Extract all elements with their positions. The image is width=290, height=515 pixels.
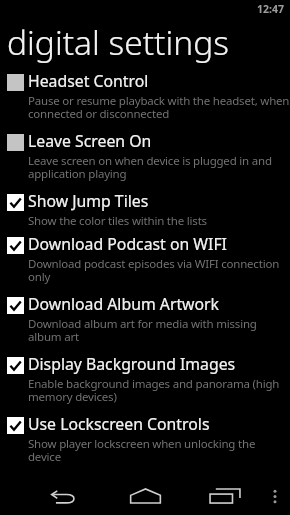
staticText: Show player lockscreen when unlocking th… <box>28 436 290 465</box>
staticText: digital settings <box>7 19 229 65</box>
button[interactable]: Use Lockscreen Controls <box>0 412 290 472</box>
staticText: Display Background Images <box>28 353 236 375</box>
button[interactable]: Download Podcast on WIFI <box>0 232 290 292</box>
staticText: Download Album Artwork <box>28 293 220 315</box>
button[interactable]: Home <box>114 475 176 515</box>
staticText: Show Jump Tiles <box>28 190 149 212</box>
button[interactable]: Download Album Artwork <box>0 292 290 352</box>
button[interactable]: Recent apps <box>194 475 256 515</box>
staticText: Use Lockscreen Controls <box>28 413 210 435</box>
staticText: Enable background images and panorama (h… <box>28 376 290 405</box>
staticText: Download Podcast on WIFI <box>28 233 227 255</box>
staticText: Leave screen on when device is plugged i… <box>28 153 290 182</box>
button[interactable]: Back <box>32 475 94 515</box>
staticText: Download podcast episodes via WIFI conne… <box>28 256 290 285</box>
button[interactable]: More options <box>260 475 290 515</box>
staticText: Pause or resume playback with the headse… <box>28 93 290 122</box>
staticText: 12:47 <box>257 2 284 16</box>
button[interactable]: Headset Control <box>0 69 290 129</box>
button[interactable]: Show Jump Tiles <box>0 189 290 232</box>
staticText: Leave Screen On <box>28 130 152 152</box>
button[interactable]: Display Background Images <box>0 352 290 412</box>
staticText: Headset Control <box>28 70 149 92</box>
button[interactable]: Leave Screen On <box>0 129 290 189</box>
staticText: Download album art for media with missin… <box>28 316 290 345</box>
staticText: Show the color tiles within the lists <box>28 213 207 228</box>
